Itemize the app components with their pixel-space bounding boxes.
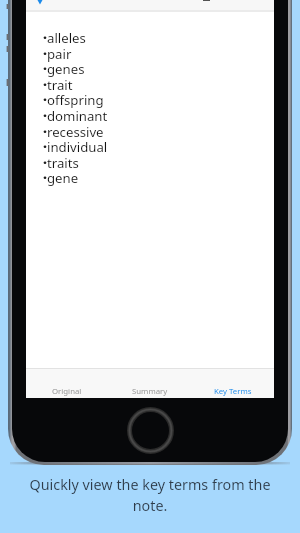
staticText: pair (47, 45, 72, 63)
staticText: dominant (47, 107, 108, 125)
staticText: alleles (47, 29, 86, 47)
button[interactable]: Original (26, 369, 108, 398)
staticText: genes (47, 60, 85, 78)
staticText: offspring (47, 91, 104, 109)
staticText: Original (52, 386, 82, 397)
button[interactable]: Home (126, 406, 175, 455)
staticText: recessive (47, 123, 104, 141)
staticText: gene (47, 169, 79, 187)
button[interactable]: Key Terms (191, 369, 274, 398)
button[interactable]: Summary (108, 369, 191, 398)
staticText: trait (47, 76, 73, 94)
staticText: Quickly view the key terms from the note… (26, 475, 274, 516)
staticText: traits (47, 154, 79, 172)
staticText: Key Terms (214, 386, 252, 397)
staticText: individual (47, 138, 108, 156)
button[interactable]: Back (26, 0, 274, 10)
staticText: Summary (132, 386, 168, 397)
